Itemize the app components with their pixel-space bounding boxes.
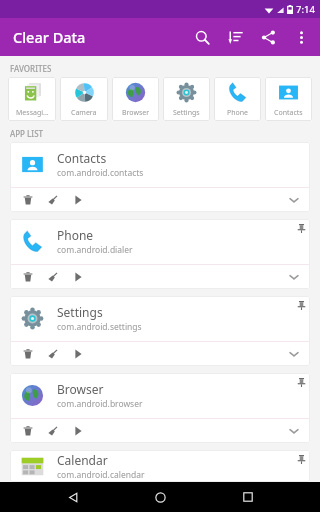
button[interactable]: Expand [284, 267, 304, 287]
staticText: com.android.contacts [57, 167, 144, 179]
staticText: Calendar [57, 452, 108, 468]
staticText: Settings [173, 108, 200, 118]
button[interactable]: Run [68, 267, 88, 287]
button[interactable]: Delete [18, 190, 38, 210]
staticText: com.android.browser [57, 398, 143, 410]
button[interactable]: Search [186, 21, 219, 54]
button[interactable]: Run [68, 421, 88, 441]
button[interactable]: Phone [10, 219, 310, 289]
button[interactable]: Share [252, 21, 285, 54]
button[interactable]: Recents [233, 482, 263, 512]
button[interactable]: Clean [43, 421, 63, 441]
button[interactable]: Browser [112, 77, 159, 121]
button[interactable]: Delete [18, 267, 38, 287]
button[interactable]: Clean [43, 344, 63, 364]
staticText: com.android.settings [57, 321, 142, 333]
button[interactable]: Contacts [10, 142, 310, 212]
staticText: APP LIST [10, 128, 44, 139]
button[interactable]: Pin [292, 373, 310, 391]
staticText: Phone [227, 108, 249, 118]
staticText: Camera [71, 108, 97, 118]
button[interactable]: Settings [10, 296, 310, 366]
staticText: Clear Data [13, 27, 86, 47]
button[interactable]: Expand [284, 190, 304, 210]
button[interactable]: Settings [163, 77, 210, 121]
button[interactable]: More options [285, 21, 318, 54]
staticText: FAVORITES [10, 63, 52, 74]
button[interactable]: Clean [43, 190, 63, 210]
staticText: Messagi... [16, 108, 49, 118]
staticText: Contacts [274, 108, 303, 118]
button[interactable]: Expand [284, 421, 304, 441]
button[interactable]: Run [68, 190, 88, 210]
staticText: com.android.dialer [57, 244, 133, 256]
button[interactable]: Home [145, 482, 175, 512]
button[interactable]: Pin [292, 219, 310, 237]
button[interactable]: Camera [60, 77, 108, 121]
button[interactable]: Phone [214, 77, 261, 121]
button[interactable]: Sort [219, 21, 252, 54]
button[interactable]: Contacts [265, 77, 312, 121]
button[interactable]: Delete [18, 344, 38, 364]
staticText: Browser [57, 381, 104, 397]
button[interactable]: Back [58, 482, 88, 512]
staticText: Settings [57, 304, 103, 320]
button[interactable]: Pin [292, 296, 310, 314]
staticText: 7:14 [296, 3, 315, 16]
button[interactable]: Calendar [10, 450, 310, 482]
staticText: Phone [57, 227, 94, 243]
button[interactable]: Pin [292, 450, 310, 468]
button[interactable]: Browser [10, 373, 310, 443]
button[interactable]: Expand [284, 344, 304, 364]
staticText: com.android.calendar [57, 469, 145, 481]
staticText: Browser [122, 108, 150, 118]
button[interactable]: Clean [43, 267, 63, 287]
button[interactable]: Messagi... [8, 77, 56, 121]
staticText: Contacts [57, 150, 107, 166]
button[interactable]: Run [68, 344, 88, 364]
button[interactable]: Delete [18, 421, 38, 441]
